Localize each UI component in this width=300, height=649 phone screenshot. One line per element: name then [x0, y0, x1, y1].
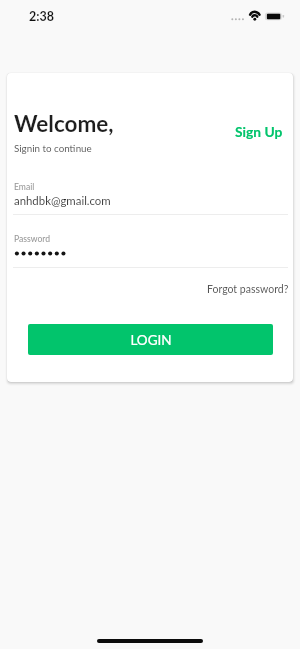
staticText: anhdbk@gmail.com — [14, 194, 111, 208]
staticText: Forgot password? — [207, 283, 289, 296]
staticText: Sign Up — [235, 123, 283, 140]
staticText: 2:38 — [29, 9, 54, 24]
staticText: Password — [14, 234, 51, 244]
button[interactable]: Forgot password? — [201, 280, 293, 299]
staticText: Welcome, — [14, 110, 114, 137]
staticText: Email — [14, 182, 35, 192]
staticText: Signin to continue — [14, 142, 92, 154]
button[interactable]: LOGIN — [28, 324, 273, 355]
staticText: LOGIN — [130, 332, 172, 348]
button[interactable]: Sign Up — [228, 120, 290, 143]
